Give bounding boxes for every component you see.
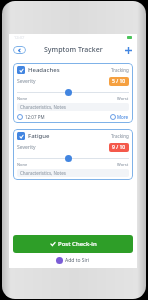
staticText: Characteristics, Notes — [20, 170, 66, 176]
staticText: 12:07 PM — [25, 114, 45, 120]
staticText: None — [17, 162, 28, 167]
staticText: Headaches — [28, 66, 60, 74]
staticText: Tracking — [111, 67, 129, 73]
button[interactable]: Add to Siri — [9, 257, 137, 264]
button[interactable]: Fatigue — [13, 129, 133, 180]
staticText: Post Check-in — [58, 240, 97, 248]
button[interactable]: Add — [123, 45, 133, 55]
button[interactable]: Headaches — [13, 63, 133, 123]
button[interactable]: Back — [13, 46, 26, 54]
staticText: 9 / 10 — [112, 144, 126, 151]
staticText: Worst — [117, 96, 129, 101]
staticText: More — [117, 114, 129, 120]
staticText: None — [17, 96, 28, 101]
staticText: 12:07 — [14, 35, 25, 40]
staticText: Fatigue — [28, 132, 50, 140]
staticText: Tracking — [111, 133, 129, 139]
staticText: Worst — [117, 162, 129, 167]
staticText: Add to Siri — [65, 257, 90, 264]
button[interactable]: Post Check-in — [13, 235, 133, 253]
staticText: 5 / 10 — [112, 78, 126, 85]
staticText: Severity — [17, 144, 36, 151]
staticText: Characteristics, Notes — [20, 104, 66, 110]
staticText: Symptom Tracker — [44, 45, 103, 55]
staticText: Severity — [17, 78, 36, 85]
